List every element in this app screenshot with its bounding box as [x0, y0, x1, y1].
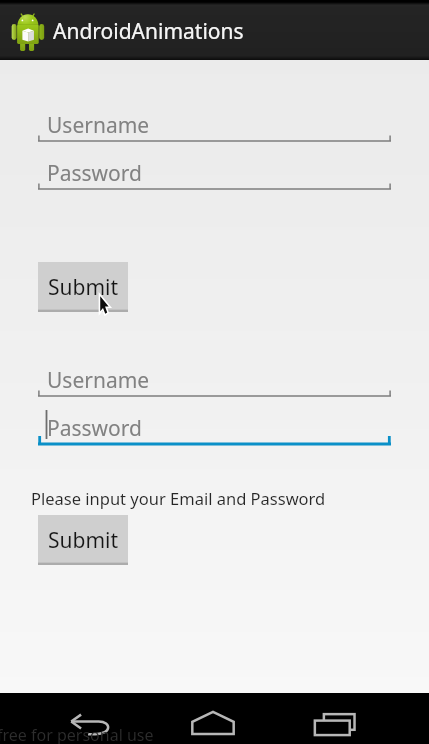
staticText: Please input your Email and Password: [31, 487, 326, 509]
button[interactable]: Recent apps: [311, 700, 359, 744]
staticText: AndroidAnimations: [53, 17, 244, 46]
button[interactable]: Password: [38, 399, 391, 447]
button[interactable]: Username: [38, 96, 391, 144]
button[interactable]: Username: [38, 351, 391, 399]
staticText: free for personal use: [0, 724, 154, 744]
staticText: Username: [47, 111, 150, 140]
staticText: Submit: [48, 273, 119, 302]
staticText: Username: [47, 366, 150, 395]
staticText: Password: [47, 159, 142, 188]
button[interactable]: Back: [66, 700, 114, 744]
staticText: Password: [47, 414, 142, 443]
button[interactable]: Home: [189, 699, 237, 744]
staticText: Submit: [48, 526, 119, 555]
button[interactable]: Submit: [38, 262, 128, 312]
button[interactable]: Submit: [38, 515, 128, 565]
button[interactable]: Password: [38, 144, 391, 192]
